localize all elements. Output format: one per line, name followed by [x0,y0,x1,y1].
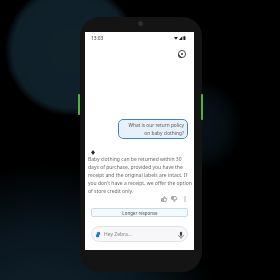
staticText: Longer response [122,210,158,216]
button[interactable]: Hey Zebra... [91,226,188,242]
staticText: 13:03 [91,35,104,42]
button[interactable]: Longer response [91,208,188,217]
button[interactable]: What is our return policy on baby clothi… [118,119,188,139]
button[interactable]: Thumbs down [169,194,179,204]
staticText: Hey Zebra... [104,231,132,238]
button[interactable]: Messages [176,48,188,60]
button[interactable]: Voice input [176,230,185,239]
staticText: Baby clothing can be returned within 30 … [88,156,192,195]
button[interactable]: Thumbs up [159,194,169,204]
staticText: What is our return policy on baby clothi… [122,122,184,136]
button[interactable]: More options [180,194,190,204]
